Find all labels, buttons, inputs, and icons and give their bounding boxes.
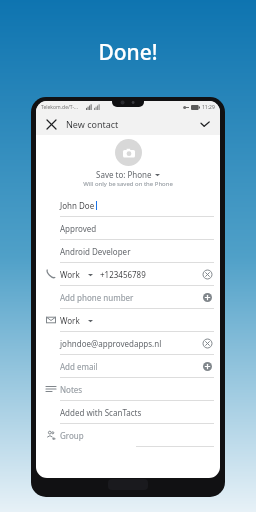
- button[interactable]: Add: [200, 359, 214, 373]
- staticText: 11:29: [202, 104, 215, 111]
- staticText: Save to: Phone: [96, 169, 152, 180]
- staticText: Add phone number: [60, 292, 134, 303]
- staticText: John Doe: [60, 200, 95, 211]
- staticText: Android Developer: [60, 246, 131, 257]
- staticText: Work: [60, 269, 80, 280]
- button[interactable]: John Doe: [36, 194, 220, 217]
- staticText: Added with ScanTacts: [60, 407, 142, 418]
- button[interactable]: Add: [200, 290, 214, 304]
- button[interactable]: Add phone number: [36, 286, 220, 309]
- staticText: +123456789: [100, 269, 146, 280]
- button[interactable]: johndoe@approvedapps.nl: [36, 332, 220, 355]
- button[interactable]: Notes: [36, 378, 220, 401]
- staticText: Notes: [60, 384, 83, 395]
- button[interactable]: Add email: [36, 355, 220, 378]
- button[interactable]: Clear: [200, 267, 214, 281]
- button[interactable]: Save: [197, 116, 213, 132]
- staticText: Telekom.de/T-...: [41, 104, 79, 111]
- staticText: New contact: [66, 118, 119, 130]
- staticText: Work: [60, 315, 80, 326]
- staticText: Group: [60, 430, 84, 441]
- staticText: Done!: [0, 38, 256, 67]
- staticText: Will only be saved on the Phone: [36, 180, 220, 188]
- button[interactable]: Work: [36, 263, 220, 286]
- button[interactable]: Added with ScanTacts: [36, 401, 220, 424]
- staticText: Add email: [60, 361, 98, 372]
- button[interactable]: Group: [36, 424, 220, 447]
- button[interactable]: Work: [36, 309, 220, 332]
- staticText: Approved: [60, 223, 97, 234]
- button[interactable]: Close: [43, 116, 59, 132]
- button[interactable]: Add photo: [115, 139, 142, 166]
- staticText: johndoe@approvedapps.nl: [60, 338, 162, 349]
- button[interactable]: Clear: [200, 336, 214, 350]
- button[interactable]: Save to: Phone: [96, 169, 160, 180]
- button[interactable]: Approved: [36, 217, 220, 240]
- button[interactable]: Android Developer: [36, 240, 220, 263]
